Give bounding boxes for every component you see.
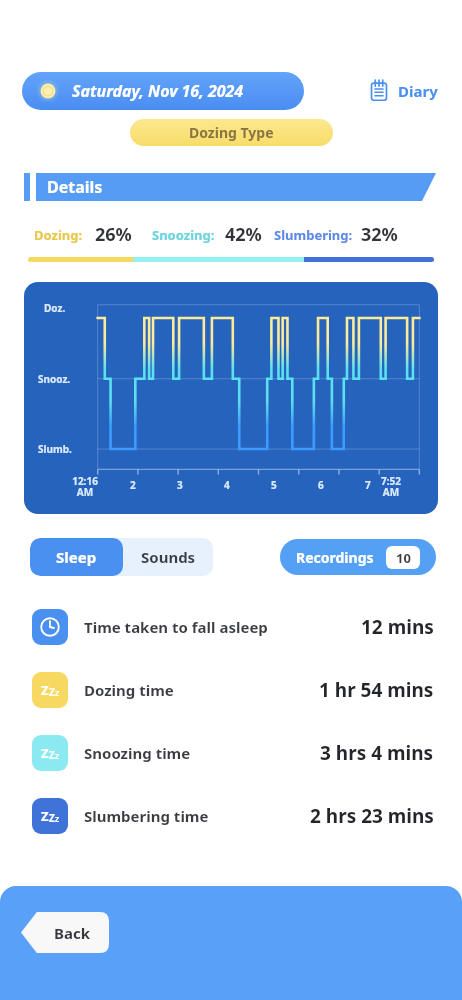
staticText: Slumbering: xyxy=(274,226,353,244)
staticText: Z xyxy=(55,752,60,762)
staticText: Z xyxy=(55,689,60,699)
staticText: 7:52 AM xyxy=(381,474,401,499)
button[interactable]: Sleep xyxy=(30,538,123,576)
staticText: Snoozing: xyxy=(152,226,215,244)
staticText: 10 xyxy=(396,549,411,567)
button[interactable]: Saturday, Nov 16, 2024 xyxy=(22,72,304,110)
staticText: Time taken to fall asleep xyxy=(84,617,268,637)
staticText: Recordings xyxy=(296,548,374,567)
staticText: 6 xyxy=(318,478,324,492)
staticText: 3 hrs 4 mins xyxy=(320,740,434,766)
button[interactable]: Dozing Type xyxy=(130,119,333,146)
button[interactable]: Back xyxy=(21,912,109,953)
staticText: Snoozing time xyxy=(84,743,191,763)
staticText: Saturday, Nov 16, 2024 xyxy=(72,80,244,102)
button[interactable]: Z xyxy=(0,784,462,847)
staticText: Z xyxy=(49,811,55,825)
staticText: Z xyxy=(49,748,55,762)
staticText: Slumb. xyxy=(38,442,72,456)
staticText: 1 hr 54 mins xyxy=(319,677,434,703)
staticText: Details xyxy=(47,176,103,198)
staticText: Z xyxy=(41,807,49,825)
staticText: Diary xyxy=(398,81,438,101)
button[interactable]: Recordings xyxy=(280,539,436,575)
staticText: Dozing: xyxy=(34,226,83,244)
staticText: 5 xyxy=(271,478,277,492)
staticText: 12:16 AM xyxy=(72,474,98,499)
staticText: Sleep xyxy=(56,547,97,567)
staticText: Sounds xyxy=(141,547,196,567)
staticText: Z xyxy=(55,815,60,825)
staticText: 2 hrs 23 mins xyxy=(310,803,434,829)
staticText: Z xyxy=(41,681,49,699)
staticText: 4 xyxy=(224,478,230,492)
staticText: Snooz. xyxy=(38,372,71,386)
button[interactable]: Z xyxy=(0,721,462,784)
staticText: Doz. xyxy=(44,301,66,315)
staticText: Dozing time xyxy=(84,680,174,700)
button[interactable]: Time taken to fall asleep xyxy=(0,595,462,658)
staticText: Z xyxy=(49,685,55,699)
staticText: 7 xyxy=(365,478,371,492)
staticText: 12 mins xyxy=(361,614,434,640)
staticText: 3 xyxy=(177,478,183,492)
staticText: Slumbering time xyxy=(84,806,209,826)
staticText: 2 xyxy=(130,478,136,492)
staticText: Z xyxy=(41,744,49,762)
staticText: 32% xyxy=(361,222,398,247)
other: Diary xyxy=(368,80,390,102)
button[interactable]: Sounds xyxy=(123,538,213,576)
staticText: 42% xyxy=(225,222,262,247)
button[interactable]: Z xyxy=(0,658,462,721)
staticText: Back xyxy=(54,923,91,943)
staticText: 26% xyxy=(95,222,132,247)
button[interactable]: Diary xyxy=(364,76,442,106)
staticText: Dozing Type xyxy=(189,123,274,142)
